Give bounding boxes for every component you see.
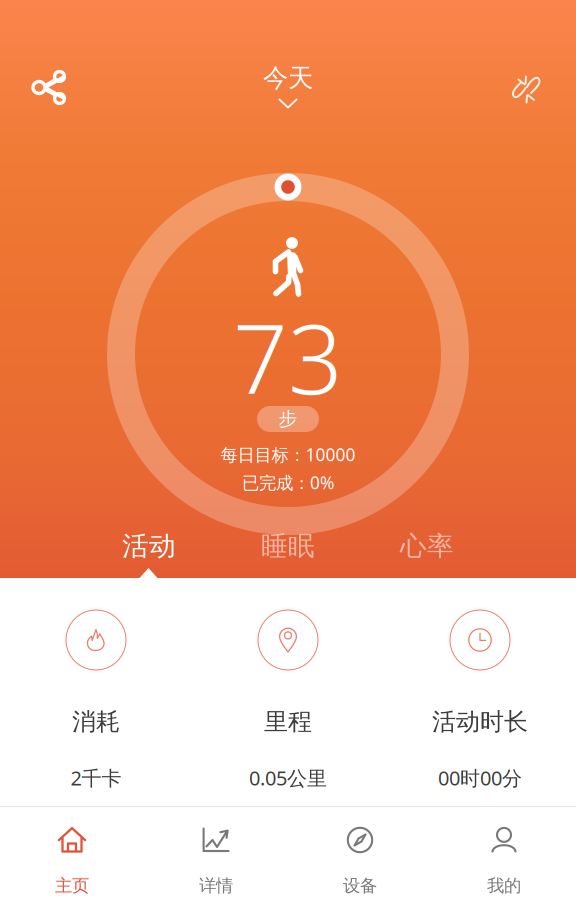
button[interactable]: 睡眠 <box>218 528 357 564</box>
button[interactable]: 里程 <box>192 578 384 806</box>
button[interactable]: Device disconnected <box>498 60 554 116</box>
staticText: 设备 <box>343 875 377 896</box>
staticText: 2千卡 <box>70 764 121 791</box>
staticText: 00时00分 <box>438 764 522 791</box>
staticText: 我的 <box>487 875 521 896</box>
button[interactable]: 我的 <box>432 807 576 907</box>
staticText: 活动时长 <box>432 707 528 736</box>
staticText: 里程 <box>264 707 312 736</box>
button[interactable]: 活动时长 <box>384 578 576 806</box>
button[interactable]: 今天 <box>263 62 313 113</box>
button[interactable]: 心率 <box>357 528 496 564</box>
button[interactable]: 活动 <box>79 528 218 564</box>
staticText: 详情 <box>199 875 233 896</box>
staticText: 今天 <box>263 62 313 93</box>
button[interactable]: 详情 <box>144 807 288 907</box>
staticText: 已完成：0% <box>242 471 334 494</box>
staticText: 消耗 <box>72 707 120 736</box>
staticText: 活动 <box>122 530 176 562</box>
staticText: 0.05公里 <box>249 764 327 791</box>
staticText: 主页 <box>55 875 89 896</box>
staticText: 步 <box>278 407 297 430</box>
button[interactable]: 设备 <box>288 807 432 907</box>
staticText: 心率 <box>400 530 454 562</box>
button[interactable]: Share <box>22 60 78 116</box>
button[interactable]: 主页 <box>0 807 144 907</box>
button[interactable]: 消耗 <box>0 578 192 806</box>
staticText: 睡眠 <box>261 530 315 562</box>
staticText: 73 <box>233 293 343 421</box>
staticText: 每日目标：10000 <box>220 443 355 466</box>
